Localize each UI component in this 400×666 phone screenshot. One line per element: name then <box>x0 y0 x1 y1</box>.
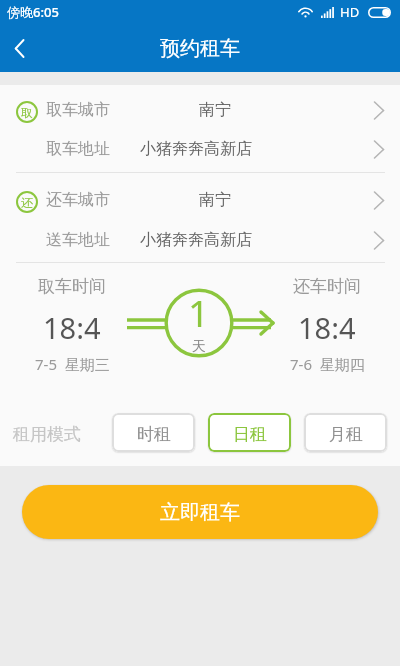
staticText: 立即租车 <box>160 500 240 525</box>
staticText: 时租 <box>137 424 171 445</box>
staticText: 1 <box>188 287 210 337</box>
staticText: 18:4 <box>298 308 356 347</box>
staticText: 南宁 <box>199 190 231 210</box>
staticText: 还 <box>21 195 33 210</box>
staticText: 送车地址 <box>46 230 110 250</box>
staticText: 预约租车 <box>160 36 240 61</box>
staticText: 还车时间 <box>293 276 361 297</box>
button[interactable]: 立即租车 <box>22 485 378 539</box>
staticText: 取 <box>21 105 33 120</box>
staticText: 南宁 <box>199 100 231 120</box>
button[interactable]: 取车地址 <box>0 127 400 171</box>
button[interactable]: 月租 <box>304 413 387 452</box>
staticText: HD <box>340 3 360 21</box>
staticText: 取车时间 <box>38 276 106 297</box>
button[interactable]: 日租 <box>208 413 291 452</box>
button[interactable]: Back <box>0 29 38 67</box>
staticText: 天 <box>192 338 206 356</box>
button[interactable]: 送车地址 <box>0 218 400 262</box>
staticText: 租用模式 <box>13 424 81 445</box>
staticText: 还车城市 <box>46 190 110 210</box>
staticText: 7-5 星期三 <box>35 354 110 374</box>
staticText: 日租 <box>233 424 267 445</box>
staticText: 18:4 <box>43 308 101 347</box>
staticText: 取车城市 <box>46 100 110 120</box>
staticText: 小猪奔奔高新店 <box>140 139 252 159</box>
staticText: 7-6 星期四 <box>290 354 365 374</box>
staticText: 取车地址 <box>46 139 110 159</box>
staticText: 小猪奔奔高新店 <box>140 230 252 250</box>
button[interactable]: 时租 <box>112 413 195 452</box>
button[interactable]: 取 <box>0 88 400 132</box>
staticText: 傍晚6:05 <box>7 3 59 21</box>
button[interactable]: 还 <box>0 178 400 222</box>
staticText: 月租 <box>329 424 363 445</box>
